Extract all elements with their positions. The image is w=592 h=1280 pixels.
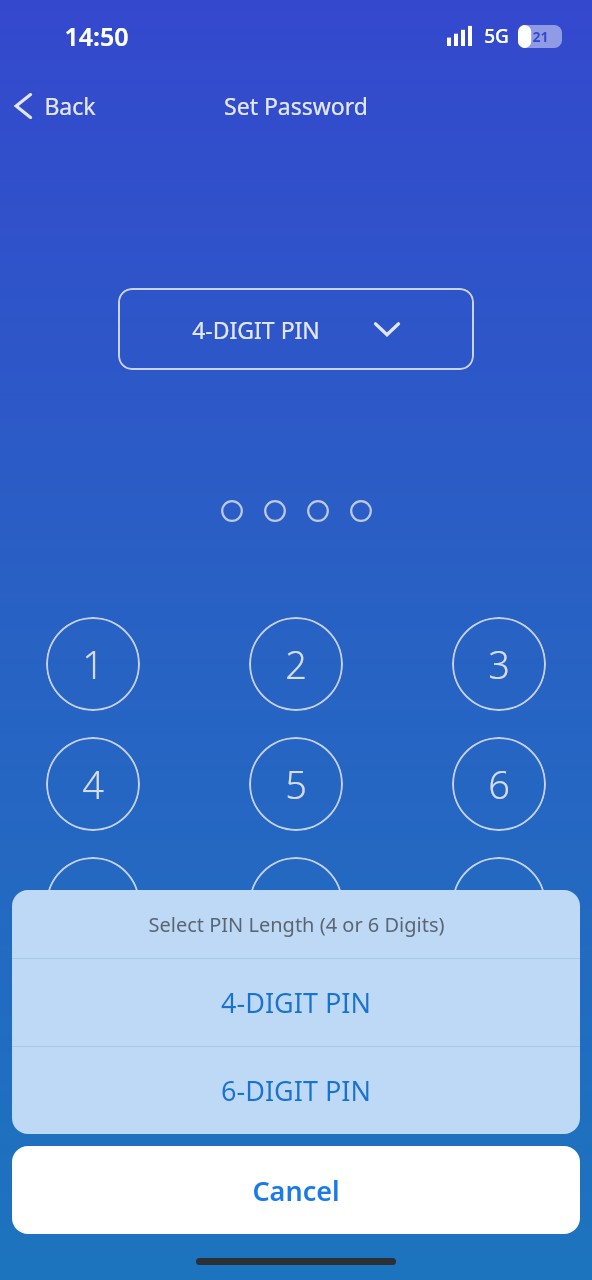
staticText: 8 — [285, 878, 307, 930]
button[interactable]: 4-DIGIT PIN — [118, 288, 474, 370]
button[interactable]: Back — [0, 84, 108, 127]
staticText: 5 — [285, 758, 307, 810]
button[interactable]: 7 — [46, 857, 140, 951]
button[interactable]: 2 — [249, 617, 343, 711]
staticText: Set Password — [224, 90, 368, 121]
staticText: Cancel — [252, 1172, 340, 1209]
staticText: 4 — [82, 758, 104, 810]
button[interactable]: Cancel — [12, 1146, 580, 1234]
button[interactable]: 4-DIGIT PIN — [12, 959, 580, 1046]
staticText: 5G — [484, 23, 509, 49]
button[interactable]: 6-DIGIT PIN — [12, 1047, 580, 1134]
staticText: 7 — [82, 878, 104, 930]
staticText: 4-DIGIT PIN — [192, 314, 320, 345]
staticText: 21 — [532, 27, 549, 46]
staticText: 14:50 — [64, 19, 129, 53]
button[interactable]: 8 — [249, 857, 343, 951]
staticText: 2 — [285, 638, 307, 690]
staticText: 3 — [488, 638, 510, 690]
staticText: 1 — [82, 638, 104, 690]
button[interactable]: 4 — [46, 737, 140, 831]
staticText: Back — [44, 90, 96, 121]
staticText: 9 — [488, 878, 510, 930]
button[interactable]: 6 — [452, 737, 546, 831]
button[interactable]: 5 — [249, 737, 343, 831]
button[interactable]: 9 — [452, 857, 546, 951]
button[interactable]: 3 — [452, 617, 546, 711]
staticText: Select PIN Length (4 or 6 Digits) — [148, 911, 445, 938]
staticText: 6-DIGIT PIN — [221, 1072, 371, 1109]
staticText: 4-DIGIT PIN — [221, 984, 371, 1021]
button[interactable]: 1 — [46, 617, 140, 711]
staticText: 6 — [488, 758, 510, 810]
